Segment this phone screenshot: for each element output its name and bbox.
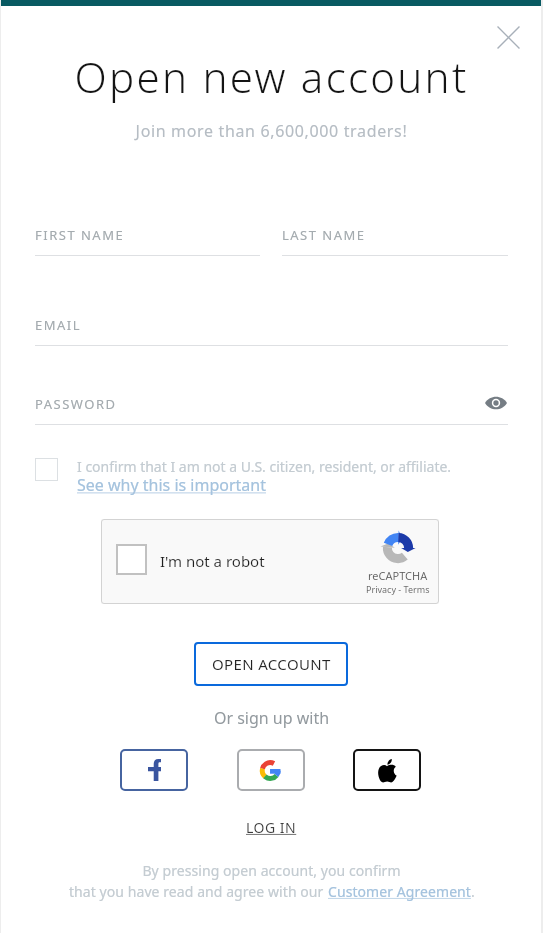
button[interactable]: Show password <box>481 388 511 418</box>
button[interactable]: OPEN ACCOUNT <box>194 642 348 686</box>
staticText: LAST NAME <box>282 226 366 244</box>
staticText: EMAIL <box>35 316 82 334</box>
button[interactable]: Confirm I am not a U.S. citizen <box>35 458 58 481</box>
staticText: FIRST NAME <box>35 226 125 244</box>
button[interactable]: Sign up with Facebook <box>120 749 188 791</box>
staticText: Or sign up with <box>0 707 543 729</box>
staticText: . <box>471 882 475 901</box>
button[interactable]: See why this is important <box>77 474 266 496</box>
staticText: By pressing open account, you confirm <box>0 861 543 880</box>
button[interactable]: Sign up with Apple <box>353 749 421 791</box>
button[interactable]: Sign up with Google <box>237 749 305 791</box>
staticText: Join more than 6,600,000 traders! <box>0 120 543 142</box>
staticText: Privacy - Terms <box>366 583 430 595</box>
staticText: I'm not a robot <box>160 551 265 571</box>
button[interactable]: Customer Agreement <box>328 882 471 901</box>
staticText: OPEN ACCOUNT <box>212 654 331 674</box>
staticText: reCAPTCHA <box>368 568 428 583</box>
staticText: that you have read and agree with our <box>69 882 328 901</box>
staticText: PASSWORD <box>35 395 117 413</box>
button[interactable]: I'm not a robot <box>101 519 439 604</box>
staticText: I confirm that I am not a U.S. citizen, … <box>77 457 452 476</box>
staticText: Open new account <box>0 48 543 105</box>
button[interactable]: Close <box>491 20 526 55</box>
button[interactable]: LOG IN <box>246 818 297 837</box>
